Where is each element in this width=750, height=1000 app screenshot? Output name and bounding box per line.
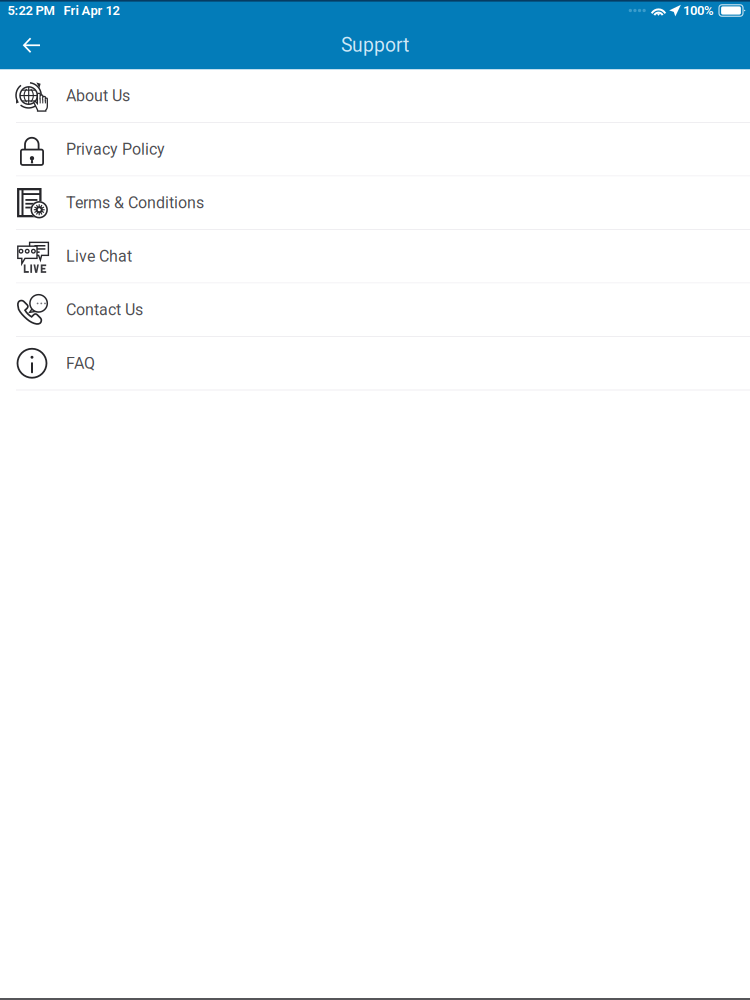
staticText: Support xyxy=(341,34,409,57)
button[interactable]: FAQ xyxy=(0,337,750,390)
staticText: 5:22 PM xyxy=(7,3,54,18)
staticText: Live Chat xyxy=(66,247,132,266)
button[interactable]: Terms & Conditions xyxy=(0,176,750,230)
staticText: Terms & Conditions xyxy=(66,193,204,212)
button[interactable]: About Us xyxy=(0,69,750,123)
staticText: Privacy Policy xyxy=(66,140,165,159)
button[interactable]: Live Chat xyxy=(0,230,750,283)
staticText: Fri Apr 12 xyxy=(63,3,119,18)
button[interactable]: Contact Us xyxy=(0,283,750,337)
button[interactable]: Back xyxy=(0,22,59,68)
button[interactable]: Privacy Policy xyxy=(0,123,750,176)
staticText: 100% xyxy=(683,3,714,18)
staticText: Contact Us xyxy=(66,300,143,319)
staticText: About Us xyxy=(66,86,130,105)
staticText: FAQ xyxy=(66,354,95,373)
